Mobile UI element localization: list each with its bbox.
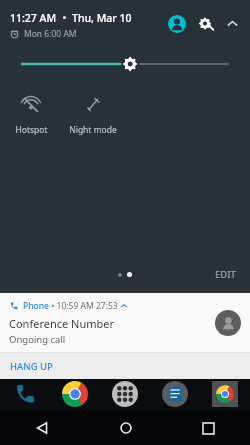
button[interactable]: Hotspot bbox=[0, 91, 62, 140]
staticText: HANG UP bbox=[10, 360, 53, 373]
button[interactable]: Phone bbox=[0, 300, 250, 352]
staticText: Thu, Mar 10 bbox=[72, 11, 132, 25]
staticText: Phone bbox=[23, 300, 49, 312]
button[interactable]: Back bbox=[0, 411, 84, 445]
button[interactable]: Apps bbox=[100, 379, 150, 409]
button[interactable]: Messages bbox=[150, 379, 200, 409]
button[interactable]: Browser bbox=[200, 379, 250, 409]
button[interactable]: Home bbox=[84, 411, 167, 445]
button[interactable]: Collapse bbox=[221, 12, 243, 34]
button[interactable]: User profile bbox=[165, 12, 189, 36]
staticText: • bbox=[57, 11, 72, 25]
button[interactable]: Phone bbox=[0, 379, 50, 409]
staticText: EDIT bbox=[215, 268, 236, 281]
staticText: Hotspot bbox=[15, 124, 48, 136]
button[interactable]: Chrome bbox=[50, 379, 100, 409]
button[interactable]: Settings bbox=[194, 12, 218, 36]
staticText: Conference Number bbox=[9, 316, 115, 331]
button[interactable]: Night mode bbox=[62, 91, 124, 140]
staticText: Mon 6:00 AM bbox=[24, 28, 77, 40]
staticText: Ongoing call bbox=[9, 333, 66, 346]
button[interactable]: EDIT bbox=[211, 265, 240, 284]
staticText: • 10:59 AM 27:53 bbox=[49, 300, 120, 312]
staticText: Night mode bbox=[69, 124, 117, 136]
button[interactable]: Recents bbox=[167, 411, 250, 445]
staticText: 11:27 AM bbox=[10, 11, 57, 25]
button[interactable]: HANG UP bbox=[0, 353, 250, 379]
button[interactable]: Brightness bbox=[22, 53, 228, 75]
